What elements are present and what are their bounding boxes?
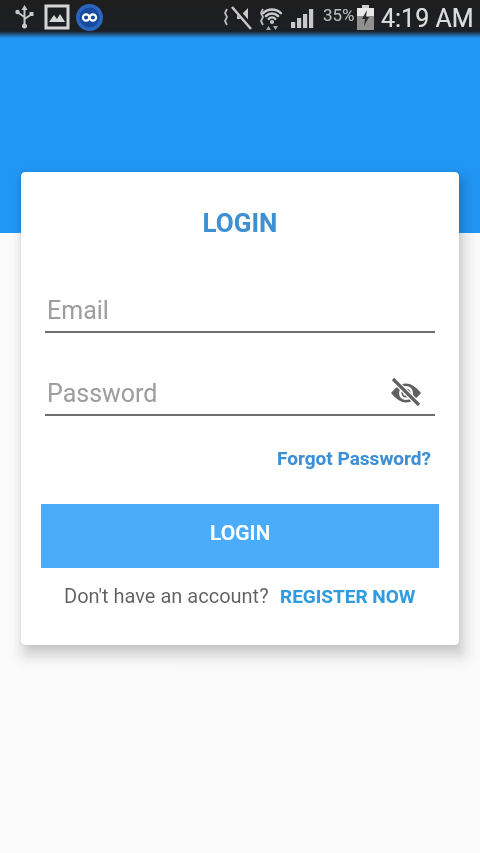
- staticText: 35%: [323, 5, 355, 25]
- staticText: LOGIN: [210, 521, 271, 546]
- button[interactable]: Email: [45, 286, 435, 334]
- staticText: Email: [47, 296, 109, 325]
- button[interactable]: Password: [45, 369, 435, 417]
- staticText: LOGIN: [21, 208, 459, 238]
- button[interactable]: LOGIN: [41, 504, 439, 568]
- button[interactable]: REGISTER NOW: [280, 585, 416, 607]
- button[interactable]: [389, 378, 423, 408]
- staticText: Password: [47, 379, 158, 408]
- button[interactable]: Forgot Password?: [277, 447, 432, 469]
- staticText: REGISTER NOW: [280, 585, 416, 607]
- staticText: Don't have an account?: [64, 584, 269, 607]
- staticText: Forgot Password?: [277, 447, 432, 469]
- staticText: 4:19 AM: [381, 4, 474, 33]
